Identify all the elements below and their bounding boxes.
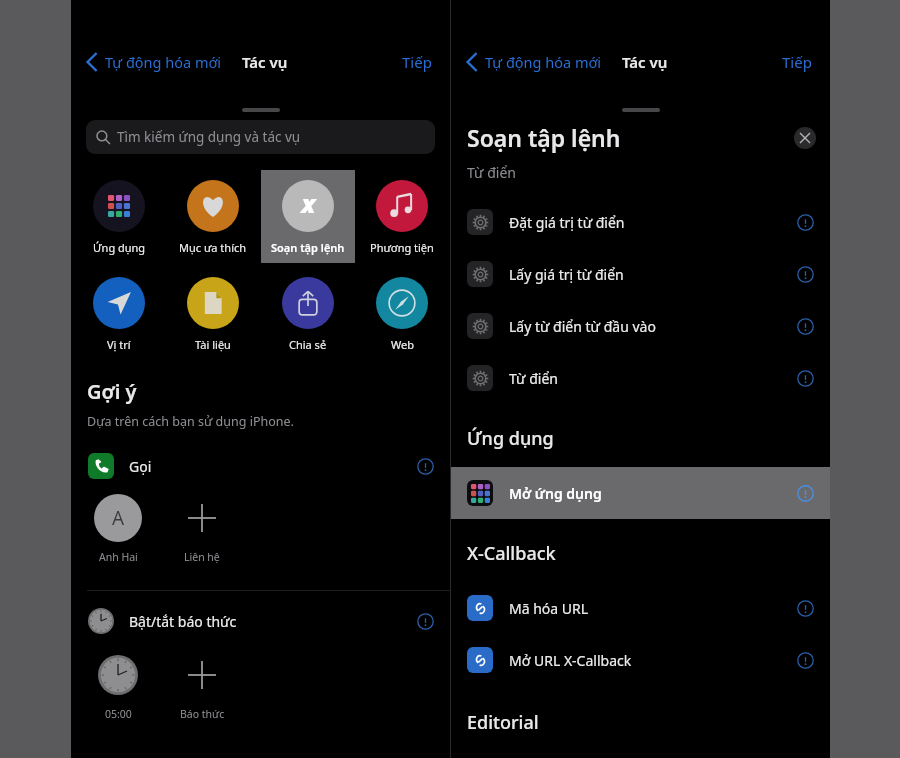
staticText: Gợi ý <box>87 378 137 405</box>
staticText: 𝒙 <box>300 194 316 218</box>
other: Add <box>188 504 216 532</box>
button[interactable]: Bật/tắt báo thức <box>71 607 450 635</box>
staticText: Ứng dụng <box>467 426 554 451</box>
button[interactable]: Info <box>797 318 814 335</box>
button[interactable]: Tài liệu <box>166 267 260 360</box>
staticText: A <box>112 505 125 531</box>
button[interactable]: Add <box>171 651 233 721</box>
staticText: X-Callback <box>467 541 556 566</box>
staticText: Tác vụ <box>622 52 668 72</box>
staticText: Dựa trên cách bạn sử dụng iPhone. <box>87 413 294 430</box>
other: Add <box>188 661 216 689</box>
button[interactable]: Lấy giá trị từ điển <box>451 248 830 300</box>
staticText: Gọi <box>129 457 152 476</box>
staticText: Tự động hóa mới <box>485 52 602 72</box>
button[interactable]: Info <box>797 214 814 231</box>
button[interactable]: Mục ưa thích <box>166 170 260 263</box>
staticText: Bật/tắt báo thức <box>129 612 237 631</box>
staticText: Tự động hóa mới <box>105 52 222 72</box>
button[interactable]: Info <box>797 600 814 617</box>
staticText: 05:00 <box>105 707 132 721</box>
staticText: Vị trí <box>107 337 131 352</box>
staticText: Tiếp <box>782 52 812 72</box>
button[interactable]: Chia sẻ <box>261 267 355 360</box>
button[interactable]: Info <box>417 613 434 630</box>
button[interactable]: Web <box>355 267 449 360</box>
button[interactable]: Ứng dụng <box>72 170 166 263</box>
staticText: Liên hệ <box>184 550 220 564</box>
staticText: Lấy giá trị từ điển <box>509 265 624 284</box>
staticText: Tiếp <box>402 52 432 72</box>
button[interactable]: Info <box>797 485 814 502</box>
button[interactable]: Info <box>417 458 434 475</box>
staticText: Mở URL X-Callback <box>509 651 632 670</box>
staticText: Phương tiện <box>370 240 434 255</box>
button[interactable]: Tìm kiếm ứng dụng và tác vụ <box>86 120 435 154</box>
button[interactable]: Phương tiện <box>355 170 449 263</box>
staticText: Tài liệu <box>195 337 231 352</box>
staticText: Từ điển <box>509 369 558 388</box>
staticText: Mở ứng dụng <box>509 484 602 503</box>
button[interactable]: Gọi <box>71 452 450 480</box>
button[interactable]: Mở URL X-Callback <box>451 634 830 686</box>
button[interactable]: Tiếp <box>778 48 816 76</box>
button[interactable]: A <box>87 494 149 564</box>
staticText: Đặt giá trị từ điển <box>509 213 625 232</box>
staticText: Ứng dụng <box>93 240 146 255</box>
staticText: Anh Hai <box>99 550 138 564</box>
staticText: Mã hóa URL <box>509 599 589 618</box>
staticText: Tìm kiếm ứng dụng và tác vụ <box>117 128 301 146</box>
button[interactable]: 05:00 <box>87 651 149 721</box>
staticText: Web <box>391 337 414 352</box>
staticText: Soạn tập lệnh <box>271 240 345 255</box>
button[interactable]: Tiếp <box>398 48 436 76</box>
staticText: Lấy từ điển từ đầu vào <box>509 317 656 336</box>
staticText: Báo thức <box>180 707 225 721</box>
staticText: Từ điển <box>467 163 516 182</box>
button[interactable]: Lấy từ điển từ đầu vào <box>451 300 830 352</box>
staticText: Mục ưa thích <box>179 240 247 255</box>
staticText: Soạn tập lệnh <box>467 122 621 153</box>
staticText: Tác vụ <box>242 52 288 72</box>
button[interactable]: Info <box>797 652 814 669</box>
button[interactable]: Info <box>797 266 814 283</box>
button[interactable]: Info <box>797 370 814 387</box>
button[interactable]: Mã hóa URL <box>451 582 830 634</box>
button[interactable]: Close <box>794 127 816 149</box>
button[interactable]: Mở ứng dụng <box>451 467 830 519</box>
button[interactable]: Add <box>171 494 233 564</box>
button[interactable]: Đặt giá trị từ điển <box>451 196 830 248</box>
button[interactable]: 𝒙 <box>261 170 355 263</box>
button[interactable]: Vị trí <box>72 267 166 360</box>
button[interactable]: Từ điển <box>451 352 830 404</box>
button[interactable]: Tự động hóa mới <box>463 48 606 76</box>
button[interactable]: Tự động hóa mới <box>83 48 226 76</box>
staticText: Editorial <box>467 710 539 735</box>
staticText: Chia sẻ <box>289 337 327 352</box>
